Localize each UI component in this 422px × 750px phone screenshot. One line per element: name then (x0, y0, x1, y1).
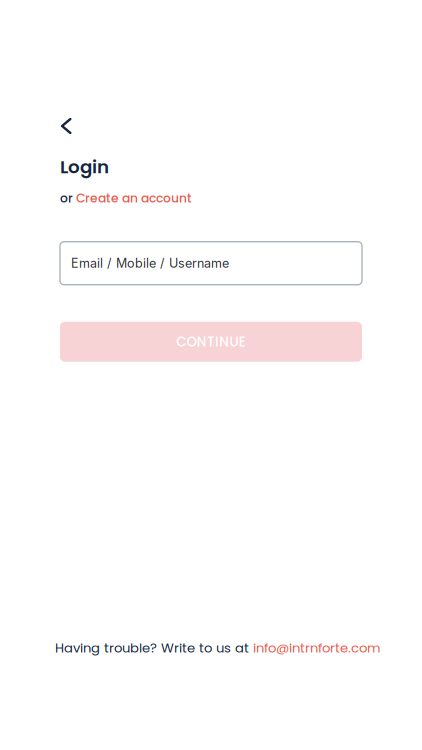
button[interactable]: info@intrnforte.com (253, 639, 381, 657)
button[interactable]: CONTINUE (60, 322, 362, 362)
staticText: Email / Mobile / Username (71, 256, 229, 271)
button[interactable]: Email / Mobile / Username (60, 242, 362, 285)
staticText: Create an account (76, 190, 192, 207)
button[interactable]: Create an account (76, 190, 192, 207)
button[interactable]: Back (61, 109, 95, 143)
staticText: Having trouble? Write to us at (55, 639, 253, 657)
staticText: info@intrnforte.com (253, 639, 381, 657)
staticText: Login (60, 154, 109, 180)
staticText: CONTINUE (176, 332, 246, 351)
staticText: or (60, 190, 73, 207)
